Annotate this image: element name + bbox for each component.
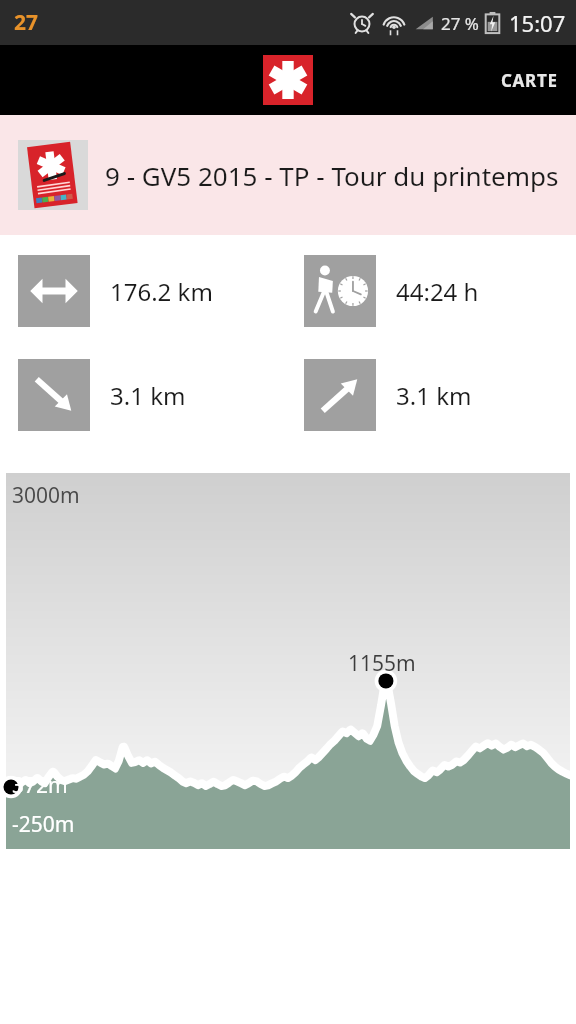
other: Distance [18, 255, 90, 327]
staticText: 3.1 km [110, 379, 186, 412]
button[interactable]: Distance [0, 255, 288, 327]
button[interactable]: Duration [288, 255, 576, 327]
button[interactable]: Logo [263, 55, 313, 105]
button[interactable]: CARTE [483, 45, 576, 115]
button[interactable]: 9 - GV5 2015 - TP - Tour du printemps [0, 115, 576, 235]
staticText: 1155m [348, 649, 416, 678]
staticText: 44:24 h [396, 275, 479, 308]
other: Ascent [304, 359, 376, 431]
button[interactable]: Ascent [288, 359, 576, 431]
staticText: 27 [14, 8, 39, 37]
other: Descent [18, 359, 90, 431]
staticText: 9 - GV5 2015 - TP - Tour du printemps [105, 158, 559, 193]
staticText: 3.1 km [396, 379, 472, 412]
staticText: -250m [12, 810, 75, 839]
button[interactable]: Elevation profile [6, 473, 570, 849]
staticText: 3000m [12, 481, 80, 510]
staticText: 27 % [441, 12, 479, 35]
staticText: 15:07 [509, 8, 566, 38]
staticText: 176.2 km [110, 275, 213, 308]
other: Duration [304, 255, 376, 327]
button[interactable]: Descent [0, 359, 288, 431]
staticText: 372m [12, 771, 68, 800]
staticText: CARTE [501, 69, 558, 92]
